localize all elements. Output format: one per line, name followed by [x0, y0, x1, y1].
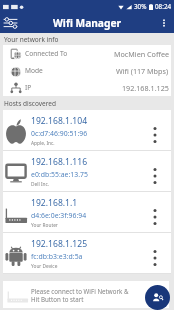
button[interactable]: 192.168.1.116: [3, 151, 171, 191]
button[interactable]: Settings: [0, 13, 20, 33]
button[interactable]: 192.168.1.125: [3, 233, 171, 273]
button[interactable]: Please connect to WiFi Network & Hit But…: [3, 281, 169, 308]
staticText: 08:24: [155, 2, 172, 11]
button[interactable]: Host options: [146, 233, 168, 273]
staticText: 192.168.1.1: [31, 197, 78, 209]
button[interactable]: 192.168.1.1: [3, 192, 171, 232]
staticText: Your Device: [31, 263, 58, 270]
button[interactable]: Host options: [146, 192, 168, 232]
staticText: d4:6e:0e:3f:96:94: [31, 211, 87, 220]
staticText: 30%: [134, 2, 147, 11]
staticText: Mode: [25, 66, 43, 75]
staticText: MocMien Coffee: [114, 49, 169, 59]
staticText: Your network info: [4, 35, 59, 44]
staticText: 192.168.1.125: [31, 238, 88, 250]
staticText: IP: [25, 83, 32, 92]
button[interactable]: IP: [3, 79, 171, 96]
staticText: fc:db:b3:e3:d:5a: [31, 252, 83, 261]
staticText: e0:db:55:ae:13.75: [31, 170, 88, 179]
staticText: Wifi (117 Mbps): [116, 66, 169, 76]
staticText: Your Router: [31, 222, 58, 229]
staticText: 192.168.1.125: [122, 83, 169, 93]
button[interactable]: Host options: [146, 110, 168, 150]
staticText: Please connect to WiFi Network & Hit But…: [31, 287, 129, 303]
button[interactable]: Connected To: [3, 45, 171, 62]
staticText: 0c:d7:46:90:51:96: [31, 129, 88, 138]
button[interactable]: More options: [154, 13, 174, 33]
button[interactable]: Start scan: [145, 285, 170, 310]
button[interactable]: 192.168.1.104: [3, 110, 171, 150]
staticText: Hosts discovered: [4, 99, 56, 108]
button[interactable]: Host options: [146, 151, 168, 191]
staticText: Dell Inc.: [31, 181, 50, 188]
staticText: Apple, Inc.: [31, 140, 55, 147]
staticText: 192.168.1.104: [31, 115, 88, 127]
staticText: Wifi Manager: [53, 16, 122, 30]
staticText: 192.168.1.116: [31, 156, 88, 168]
button[interactable]: Mode: [3, 62, 171, 79]
staticText: Connected To: [25, 49, 68, 58]
